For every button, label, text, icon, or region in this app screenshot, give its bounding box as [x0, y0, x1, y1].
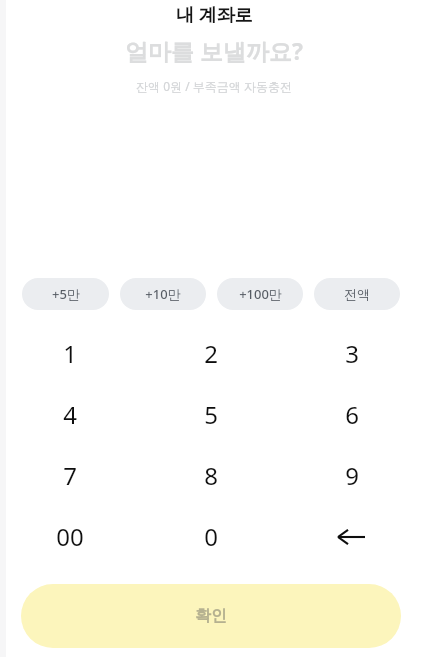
button[interactable]: +100만 [217, 278, 303, 310]
button[interactable]: 4 [0, 384, 140, 445]
staticText: +100만 [239, 285, 282, 303]
staticText: 5 [204, 398, 218, 431]
button[interactable]: 1 [0, 323, 140, 384]
staticText: 1 [63, 337, 77, 370]
staticText: 내 계좌로 [176, 2, 253, 27]
button[interactable]: 전액 [314, 278, 400, 310]
button[interactable]: 7 [0, 445, 140, 506]
button[interactable]: 5 [140, 384, 281, 445]
button[interactable]: +10만 [120, 278, 206, 310]
button[interactable]: +5만 [22, 278, 109, 310]
staticText: 6 [345, 398, 359, 431]
button[interactable]: 8 [140, 445, 281, 506]
button[interactable]: 00 [0, 506, 140, 567]
button[interactable]: 9 [281, 445, 422, 506]
staticText: 잔액 0원 / 부족금액 자동충전 [136, 78, 292, 94]
button[interactable]: 6 [281, 384, 422, 445]
staticText: 전액 [344, 286, 370, 302]
staticText: 00 [56, 520, 84, 553]
staticText: 7 [63, 459, 77, 492]
staticText: +10만 [145, 285, 181, 303]
staticText: 9 [345, 459, 359, 492]
staticText: 확인 [195, 606, 227, 626]
staticText: 0 [204, 520, 218, 553]
staticText: 얼마를 보낼까요? [125, 35, 303, 66]
button[interactable]: 0 [140, 506, 281, 567]
button[interactable]: 3 [281, 323, 422, 384]
staticText: 4 [63, 398, 77, 431]
staticText: 8 [204, 459, 218, 492]
staticText: 2 [204, 337, 218, 370]
staticText: 3 [345, 337, 359, 370]
button[interactable]: Backspace [281, 506, 422, 567]
button[interactable]: 확인 [21, 584, 401, 648]
staticText: +5만 [52, 285, 80, 303]
button[interactable]: 2 [140, 323, 281, 384]
